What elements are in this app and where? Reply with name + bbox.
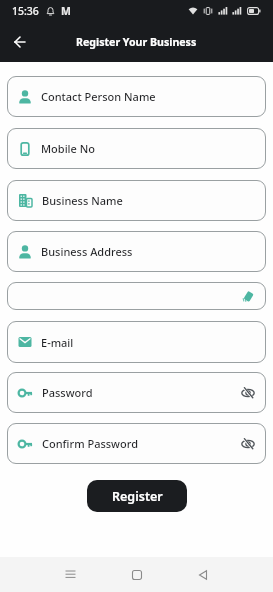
button[interactable]	[198, 570, 208, 580]
staticText: Confirm Password	[42, 436, 138, 451]
button[interactable]: Business Name	[18, 180, 255, 221]
staticText: Mobile No	[41, 141, 96, 156]
staticText: Business Name	[42, 193, 123, 208]
staticText: Password	[42, 385, 93, 400]
button[interactable]: Register	[87, 480, 187, 512]
button[interactable]: E-mail	[18, 321, 255, 363]
button[interactable]: Mobile No	[18, 128, 255, 169]
staticText: E-mail	[41, 335, 74, 350]
button[interactable]: Business Address	[18, 231, 255, 272]
staticText: M	[61, 4, 71, 18]
staticText: Contact Person Name	[41, 89, 156, 104]
staticText: Register	[112, 488, 163, 505]
button[interactable]: Password	[18, 372, 255, 413]
button[interactable]	[65, 569, 76, 580]
staticText: 15:36	[12, 4, 39, 18]
button[interactable]	[132, 570, 142, 580]
button[interactable]	[14, 36, 26, 48]
button[interactable]: Contact Person Name	[18, 76, 255, 117]
button[interactable]: Confirm Password	[18, 423, 255, 464]
button[interactable]	[18, 282, 255, 310]
staticText: Business Address	[41, 244, 133, 259]
staticText: Register Your Business	[76, 35, 197, 49]
